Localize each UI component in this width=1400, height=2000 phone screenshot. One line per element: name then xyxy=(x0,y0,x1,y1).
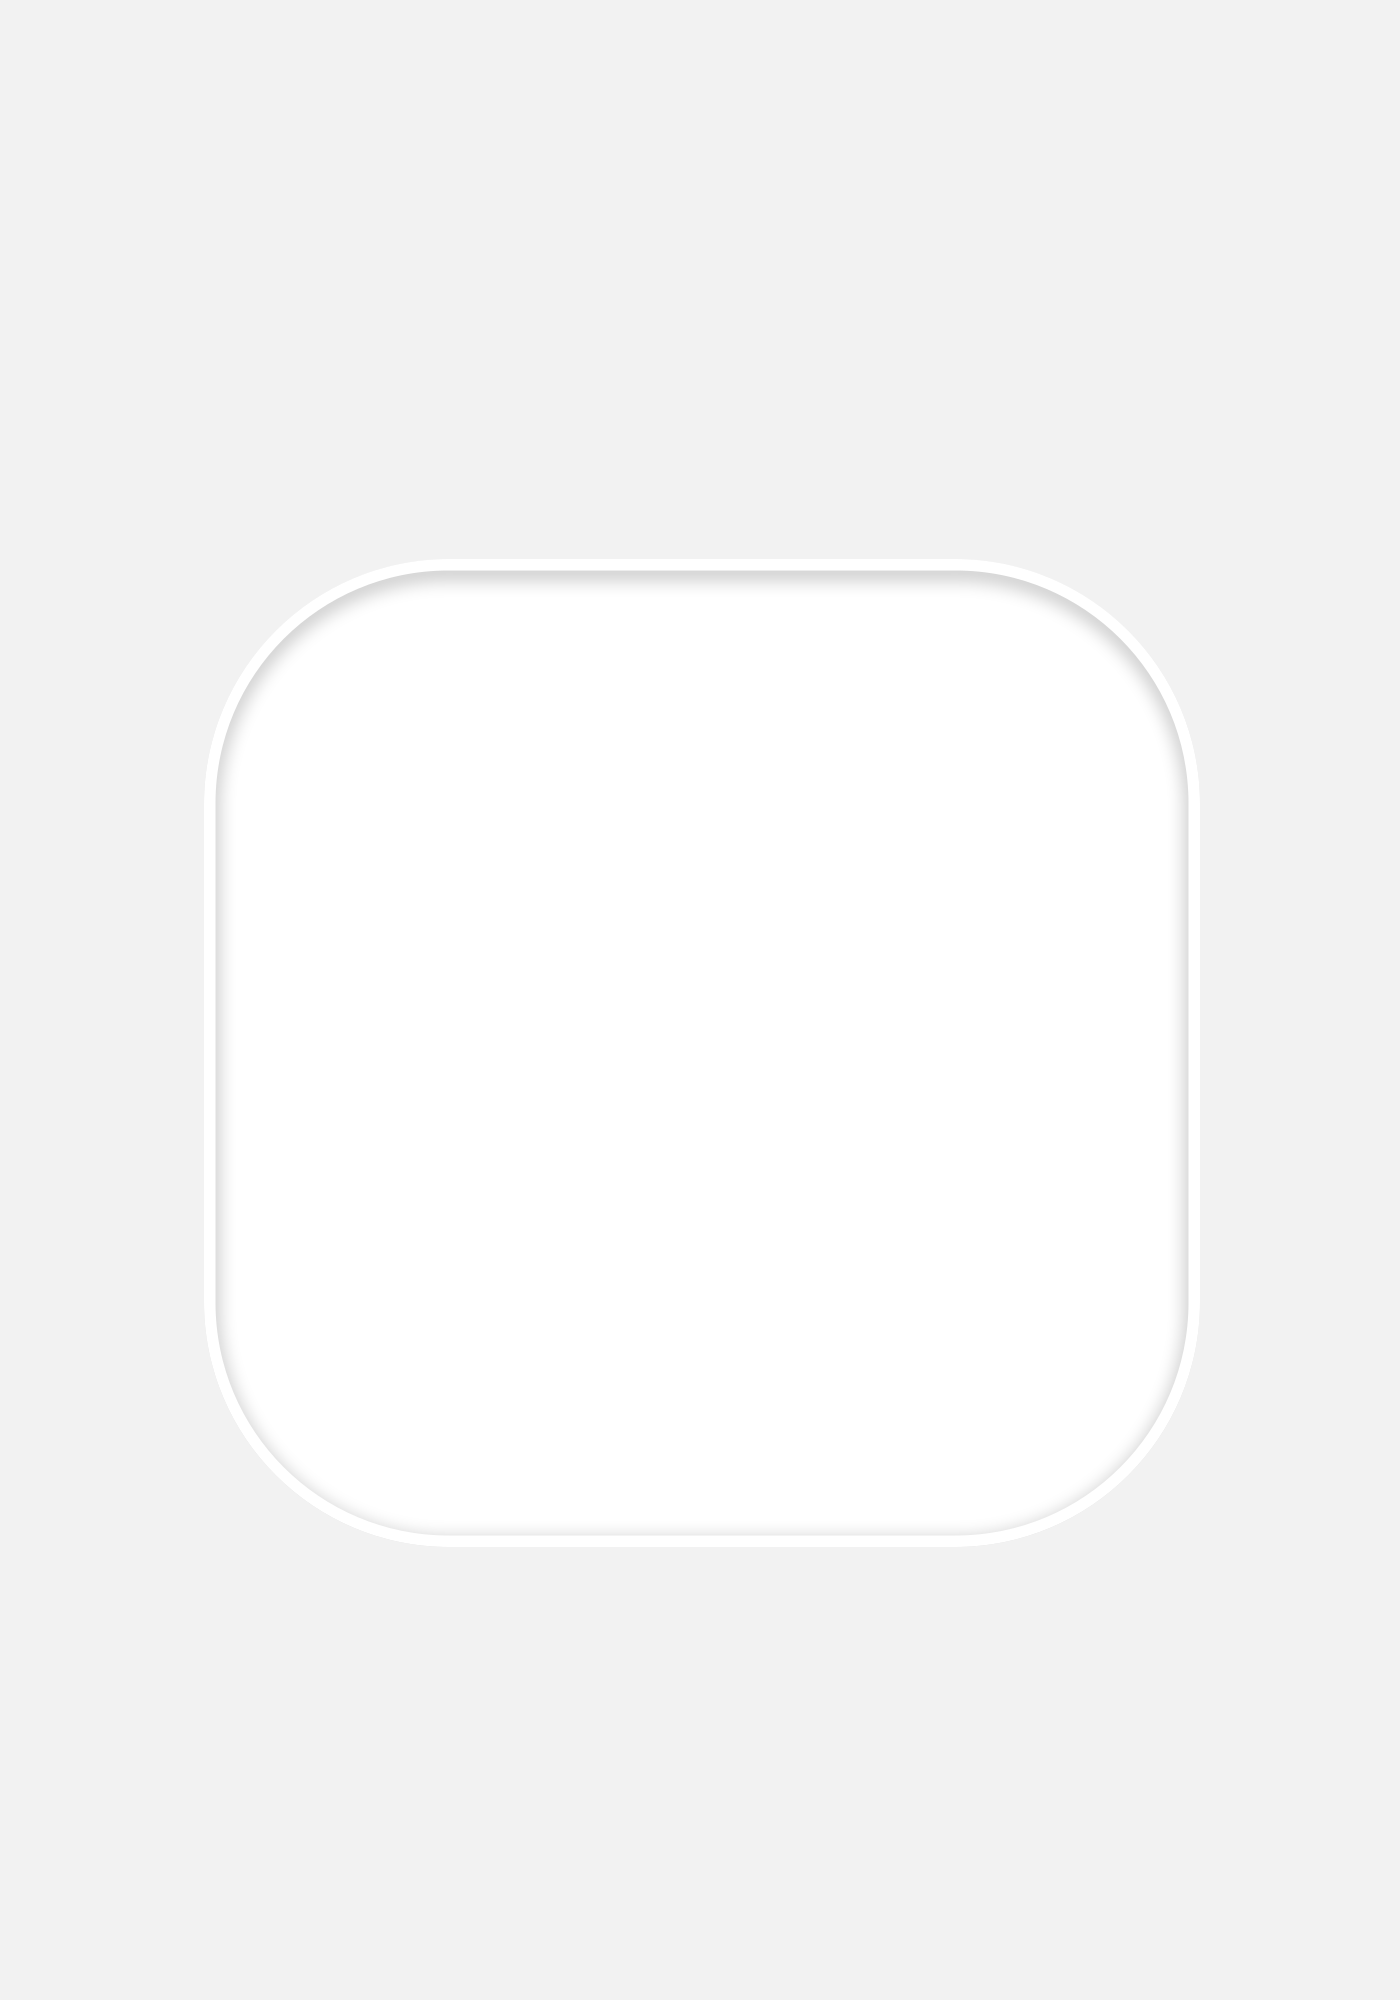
button[interactable]: Card xyxy=(204,559,1200,1547)
